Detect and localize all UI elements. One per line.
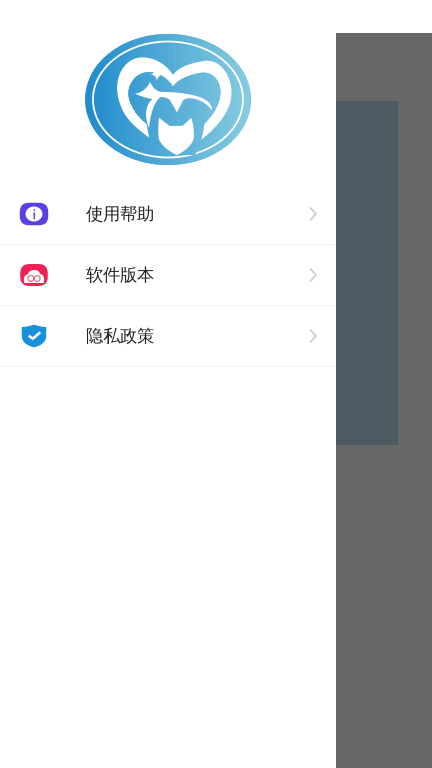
staticText: 软件版本 <box>86 264 154 286</box>
button[interactable]: i <box>0 184 336 245</box>
button[interactable]: 软件版本 <box>0 245 336 306</box>
staticText: 使用帮助 <box>86 203 154 225</box>
button[interactable]: 隐私政策 <box>0 306 336 367</box>
staticText: 隐私政策 <box>86 325 154 347</box>
staticText: i <box>32 206 35 222</box>
